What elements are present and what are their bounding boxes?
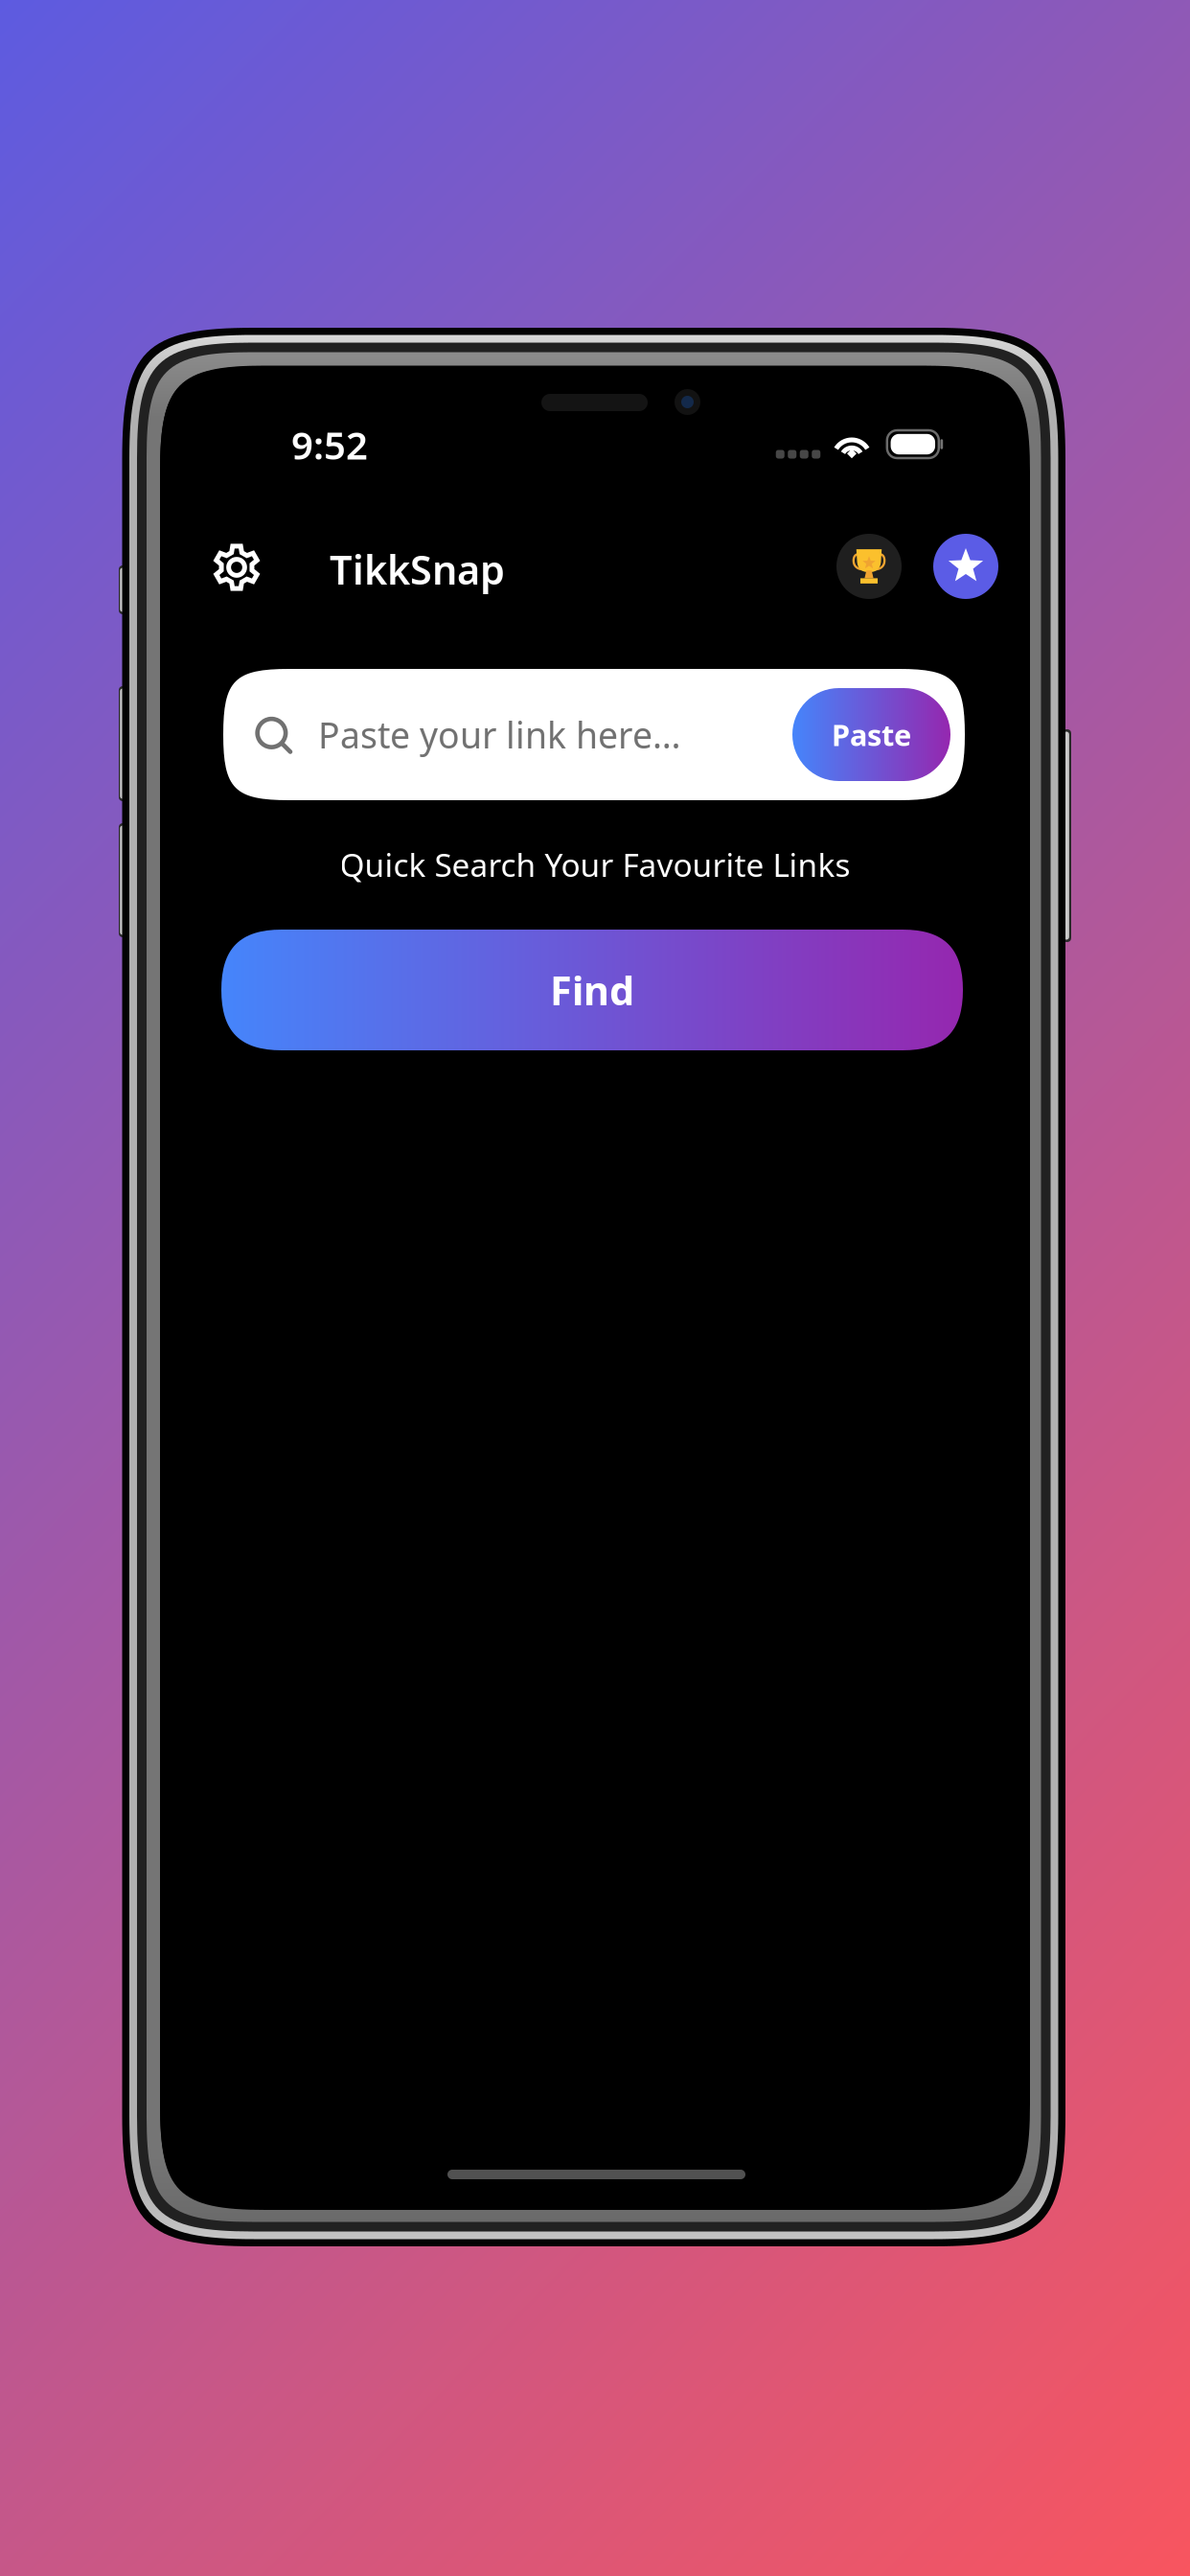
button[interactable]: Settings	[213, 543, 261, 591]
button[interactable]: Paste your link here…	[223, 669, 965, 800]
staticText: Paste	[832, 715, 911, 754]
staticText: 9:52	[291, 419, 368, 470]
staticText: TikkSnap	[330, 543, 505, 596]
button[interactable]: Find	[221, 930, 963, 1050]
staticText: Find	[550, 964, 634, 1016]
staticText: Quick Search Your Favourite Links	[340, 843, 850, 886]
button[interactable]: Achievements	[836, 534, 902, 599]
button[interactable]: Favourites	[933, 534, 998, 599]
staticText: Paste your link here…	[318, 711, 681, 758]
